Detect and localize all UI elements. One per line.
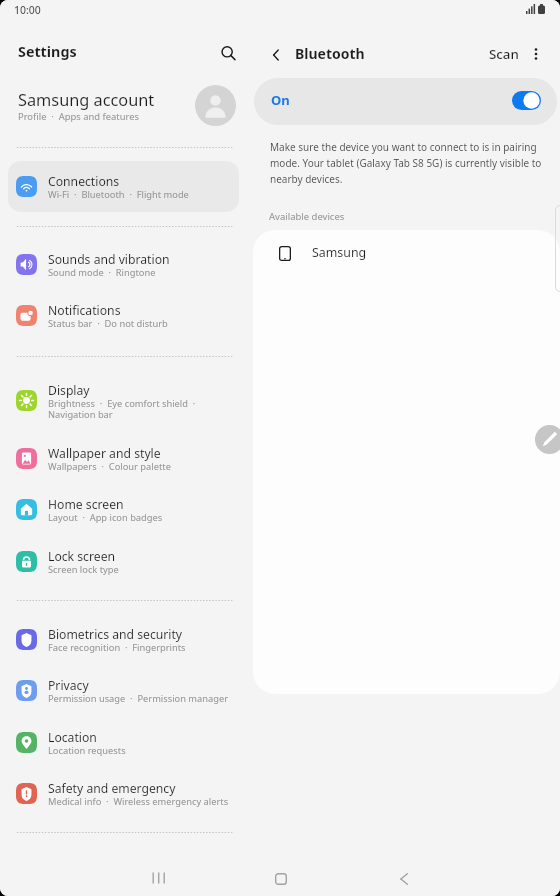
- staticText: Settings: [18, 42, 77, 61]
- staticText: Home screen: [48, 496, 124, 513]
- button[interactable]: Search: [213, 38, 244, 69]
- button[interactable]: [8, 161, 239, 212]
- button[interactable]: Samsung: [253, 230, 560, 278]
- staticText: Status bar · Do not disturb: [48, 317, 168, 330]
- staticText: Location: [48, 729, 97, 746]
- button[interactable]: Display: [16, 373, 242, 413]
- button[interactable]: Back: [384, 859, 424, 896]
- button[interactable]: Home: [261, 859, 301, 896]
- staticText: Sounds and vibration: [48, 251, 170, 268]
- button[interactable]: Scan: [483, 39, 525, 69]
- button[interactable]: Home screen: [16, 487, 242, 521]
- button[interactable]: Edit: [535, 425, 560, 454]
- staticText: Samsung account: [18, 89, 155, 111]
- staticText: Display: [48, 382, 90, 399]
- staticText: Samsung: [312, 244, 367, 261]
- staticText: Medical info · Wireless emergency alerts: [48, 795, 229, 808]
- button[interactable]: Lock screen: [16, 539, 242, 573]
- staticText: Safety and emergency: [48, 780, 176, 797]
- staticText: Wallpapers · Colour palette: [48, 460, 171, 473]
- staticText: Available devices: [269, 210, 345, 223]
- staticText: 10:00: [14, 3, 41, 17]
- button[interactable]: Sounds and vibration: [16, 242, 242, 276]
- button[interactable]: Biometrics and security: [16, 617, 242, 651]
- button[interactable]: Privacy: [16, 668, 242, 702]
- staticText: Wallpaper and style: [48, 445, 161, 462]
- button[interactable]: Safety and emergency: [16, 771, 242, 805]
- button[interactable]: Wallpaper and style: [16, 436, 242, 470]
- staticText: Privacy: [48, 677, 89, 694]
- staticText: Notifications: [48, 302, 121, 319]
- button[interactable]: Notifications: [16, 293, 242, 327]
- button[interactable]: Location: [16, 720, 242, 754]
- button[interactable]: More options: [522, 40, 550, 68]
- staticText: Profile · Apps and features: [18, 110, 139, 123]
- staticText: Biometrics and security: [48, 626, 183, 643]
- staticText: On: [271, 91, 290, 109]
- staticText: Bluetooth: [295, 44, 365, 63]
- staticText: Screen lock type: [48, 563, 119, 576]
- staticText: Layout · App icon badges: [48, 511, 163, 524]
- staticText: Navigation bar: [48, 408, 113, 421]
- staticText: Wi-Fi · Bluetooth · Flight mode: [48, 188, 189, 201]
- staticText: Scan: [489, 45, 519, 63]
- staticText: Make sure the device you want to connect…: [270, 140, 542, 185]
- button[interactable]: Samsung account: [0, 82, 250, 130]
- staticText: Face recognition · Fingerprints: [48, 641, 186, 654]
- button[interactable]: On: [254, 78, 557, 125]
- staticText: Permission usage · Permission manager: [48, 692, 228, 705]
- staticText: Brightness · Eye comfort shield ·: [48, 397, 196, 410]
- button[interactable]: Recent apps: [138, 858, 178, 896]
- staticText: Lock screen: [48, 548, 116, 565]
- staticText: Sound mode · Ringtone: [48, 266, 156, 279]
- button[interactable]: Back: [261, 40, 291, 70]
- staticText: Connections: [48, 173, 120, 190]
- staticText: Location requests: [48, 744, 126, 757]
